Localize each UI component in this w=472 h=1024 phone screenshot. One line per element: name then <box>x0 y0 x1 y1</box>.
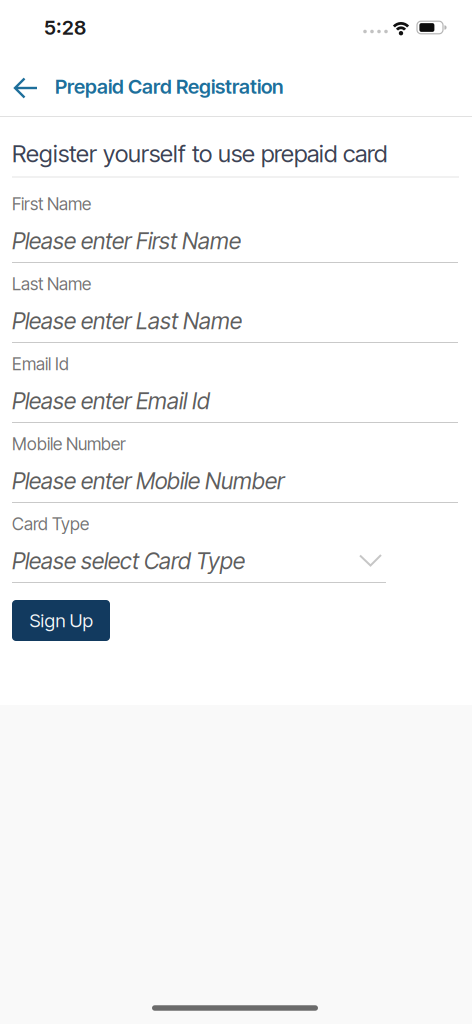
staticText: Card Type <box>12 514 89 534</box>
staticText: Please enter First Name <box>12 228 241 254</box>
staticText: Please enter Email Id <box>12 388 210 414</box>
staticText: 5:28 <box>44 16 86 39</box>
staticText: Last Name <box>12 274 91 294</box>
button[interactable]: Sign Up <box>12 600 110 641</box>
button[interactable]: Back <box>11 76 41 100</box>
staticText: Email Id <box>12 354 69 374</box>
staticText: Register yourself to use prepaid card <box>12 139 387 168</box>
staticText: Please select Card Type <box>12 548 245 574</box>
button[interactable]: Email Id <box>12 379 458 424</box>
staticText: Sign Up <box>29 609 92 631</box>
staticText: Prepaid Card Registration <box>55 75 283 98</box>
staticText: Mobile Number <box>12 434 126 454</box>
button[interactable]: Last Name <box>12 299 458 344</box>
button[interactable]: Card Type <box>12 539 386 584</box>
staticText: Please enter Last Name <box>12 308 242 334</box>
staticText: Please enter Mobile Number <box>12 468 284 494</box>
button[interactable]: Mobile Number <box>12 459 458 504</box>
staticText: First Name <box>12 194 91 214</box>
button[interactable]: First Name <box>12 219 458 264</box>
